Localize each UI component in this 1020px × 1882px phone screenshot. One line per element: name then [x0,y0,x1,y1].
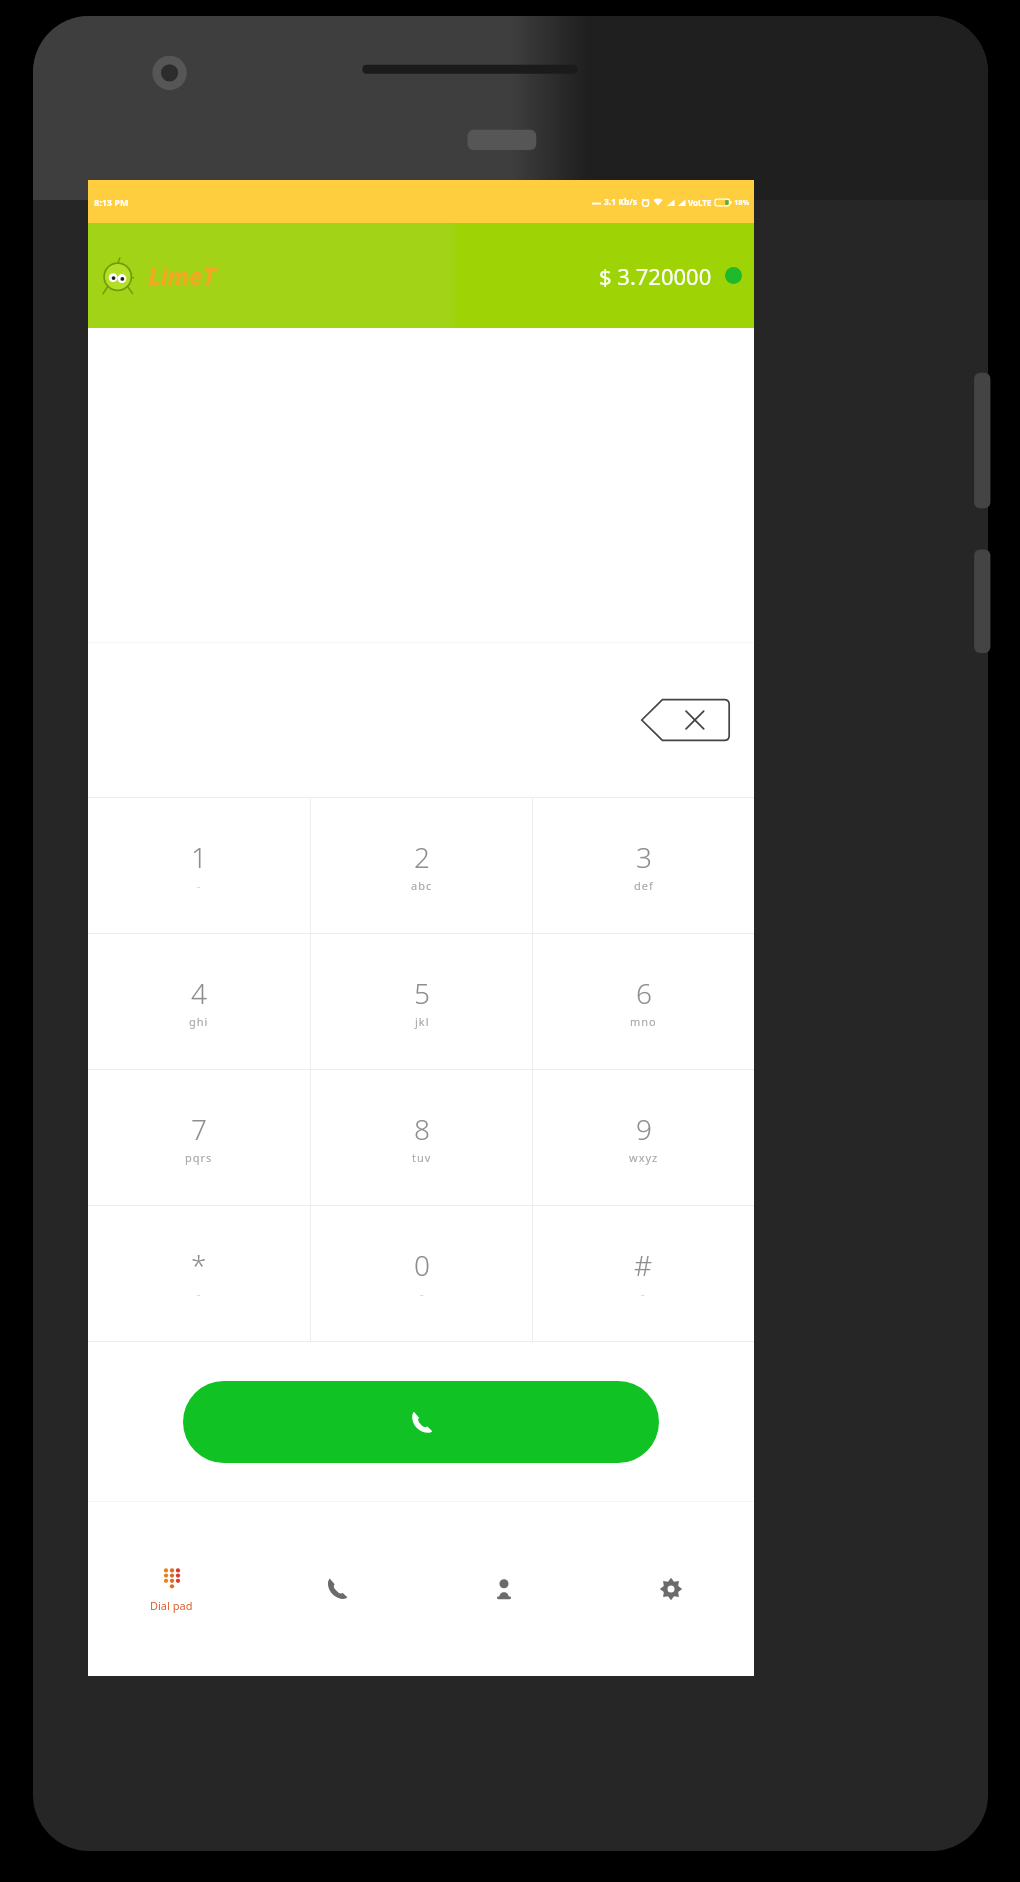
staticText: 8:13 PM [94,196,129,208]
staticText: - [641,1286,646,1301]
staticText: 7 [191,1110,207,1148]
button[interactable]: Contacts [420,1502,587,1676]
staticText: 1 [191,838,207,876]
button[interactable]: Backspace [638,686,732,754]
button[interactable]: 4 [88,934,310,1069]
button[interactable]: * [88,1206,310,1341]
button[interactable]: 9 [533,1070,754,1205]
staticText: LimeT [148,259,216,292]
button[interactable]: # [533,1206,754,1341]
staticText: - [197,1286,202,1301]
button[interactable]: Dial pad [88,1502,254,1676]
button[interactable]: 0 [311,1206,532,1341]
staticText: 18% [734,197,750,207]
staticText: def [634,878,654,893]
staticText: 3.1 Kb/s [604,196,638,208]
staticText: 3 [636,838,652,876]
staticText: $ 3.720000 [599,261,712,291]
staticText: tuv [412,1150,432,1165]
button[interactable]: 7 [88,1070,310,1205]
staticText: mno [630,1014,657,1029]
staticText: pqrs [185,1150,213,1165]
staticText: Dial pad [150,1598,193,1613]
staticText: wxyz [629,1150,659,1165]
button[interactable]: 3 [533,798,754,933]
staticText: 0 [414,1246,430,1284]
staticText: * [191,1246,207,1284]
staticText: VoLTE [688,197,712,208]
staticText: 2 [414,838,430,876]
button[interactable]: Call [183,1381,659,1463]
staticText: 9 [636,1110,652,1148]
staticText: ghi [189,1014,209,1029]
button[interactable]: 2 [311,798,532,933]
staticText: abc [411,878,433,893]
staticText: - [197,878,202,893]
button[interactable]: 8 [311,1070,532,1205]
button[interactable]: Recent calls [254,1502,420,1676]
staticText: # [634,1246,653,1284]
staticText: 5 [414,974,430,1012]
staticText: 6 [636,974,652,1012]
staticText: 4 [191,974,207,1012]
button[interactable]: 1 [88,798,310,933]
button[interactable]: 6 [533,934,754,1069]
button[interactable]: Settings [587,1502,754,1676]
staticText: 8 [414,1110,430,1148]
staticText: - [420,1286,425,1301]
button[interactable]: 5 [311,934,532,1069]
staticText: jkl [415,1014,430,1029]
